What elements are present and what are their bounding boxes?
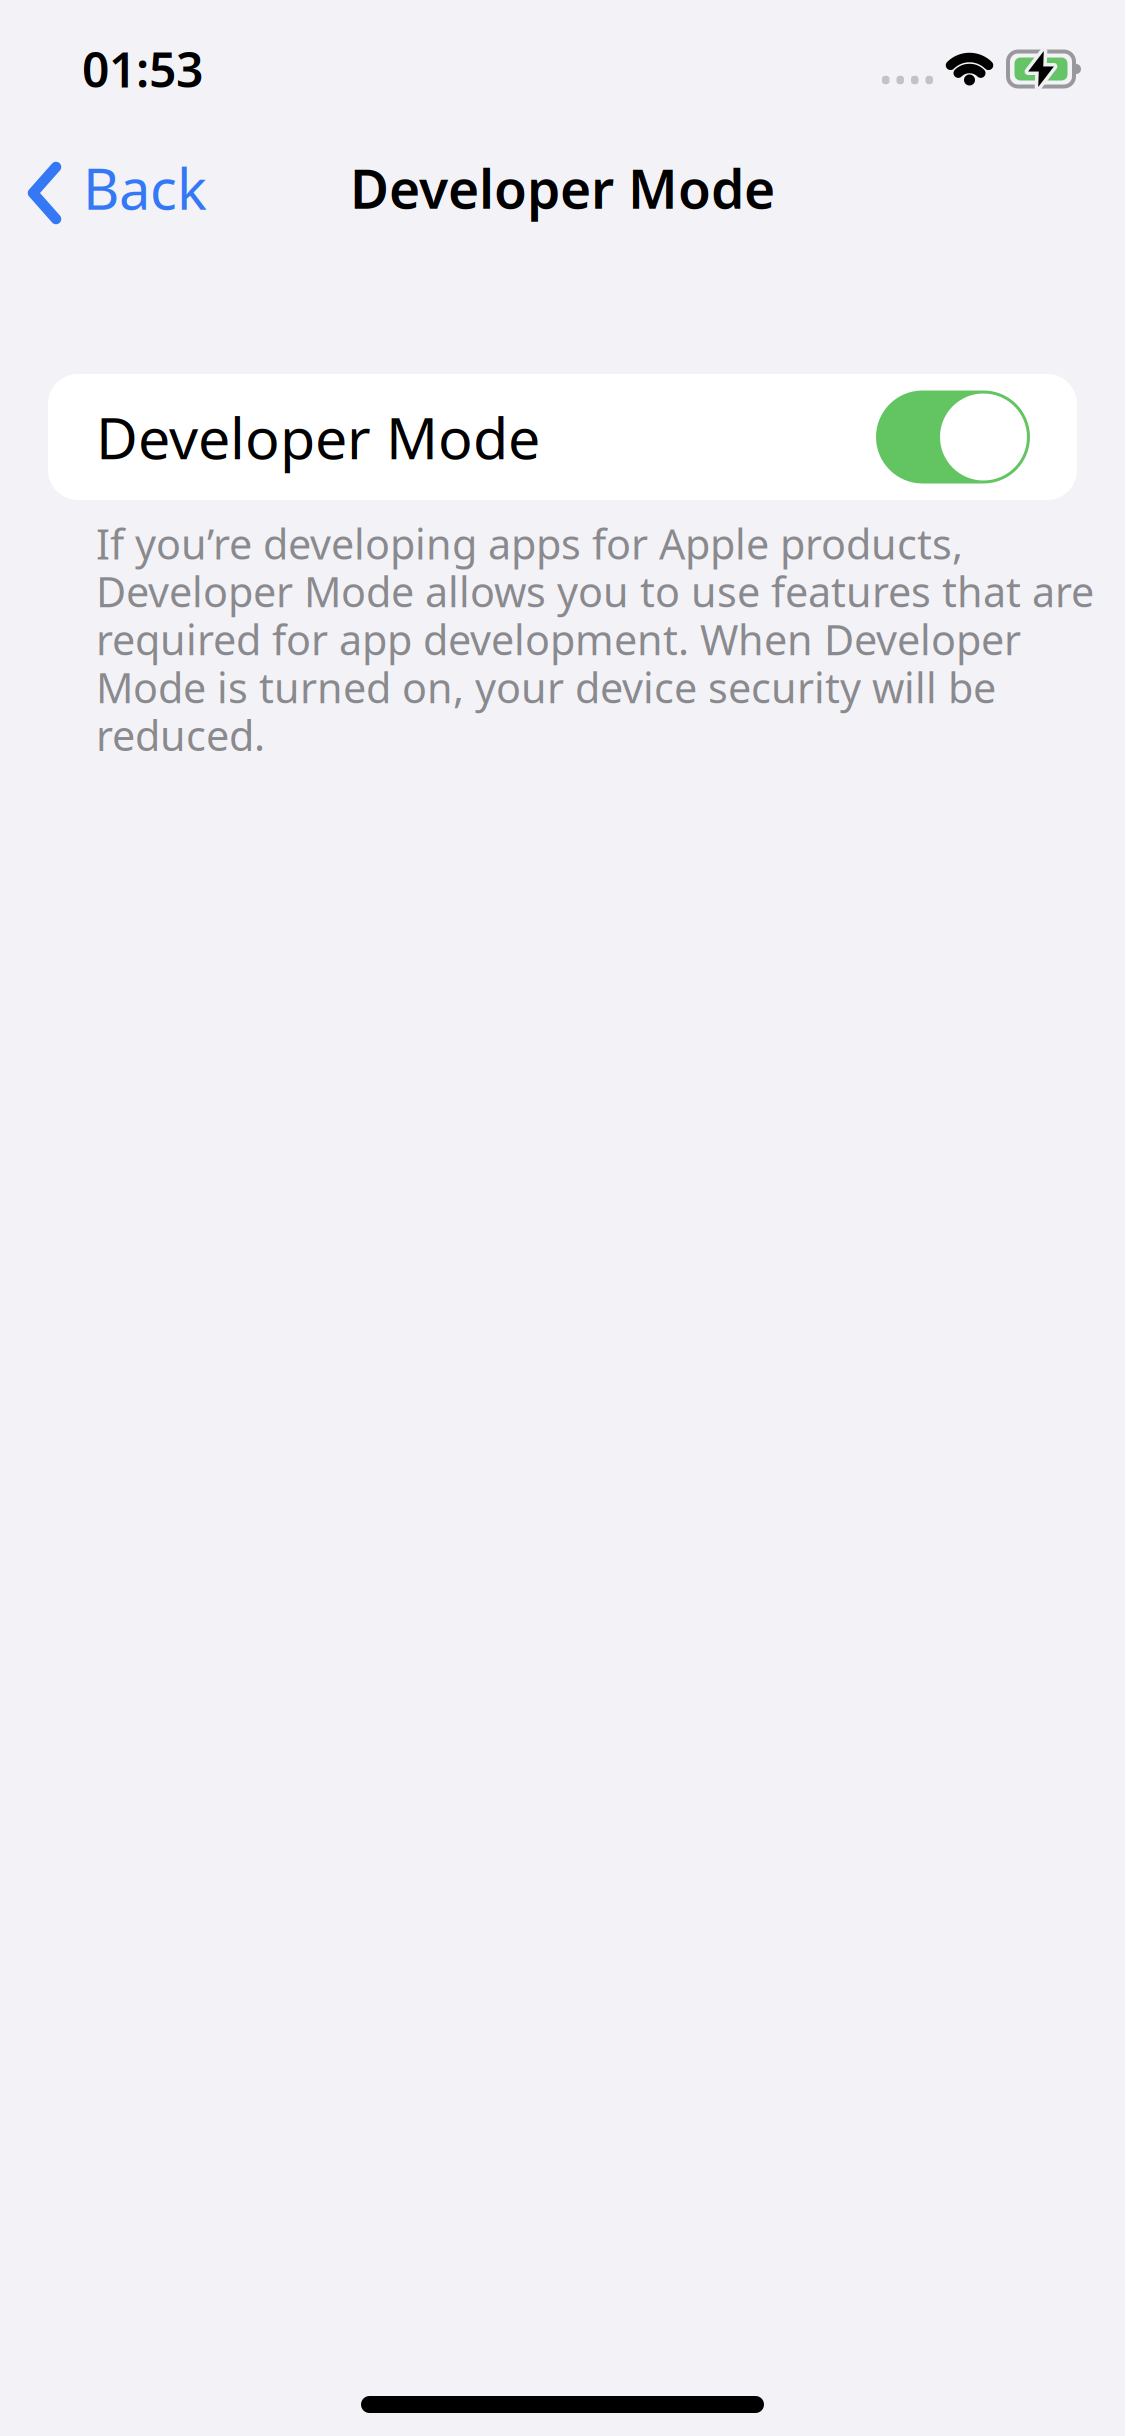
staticText: 01:53 bbox=[82, 37, 203, 101]
staticText: Developer Mode allows you to use feature… bbox=[96, 564, 1094, 619]
staticText: Developer Mode bbox=[96, 399, 540, 475]
staticText: Developer Mode bbox=[350, 153, 775, 223]
staticText: reduced. bbox=[96, 708, 265, 762]
staticText: required for app development. When Devel… bbox=[96, 612, 1021, 667]
button[interactable]: Back bbox=[0, 151, 207, 225]
button[interactable]: Developer Mode bbox=[876, 390, 1030, 483]
staticText: Mode is turned on, your device security … bbox=[96, 660, 996, 715]
staticText: Back bbox=[83, 151, 207, 225]
staticText: If you’re developing apps for Apple prod… bbox=[96, 516, 963, 571]
